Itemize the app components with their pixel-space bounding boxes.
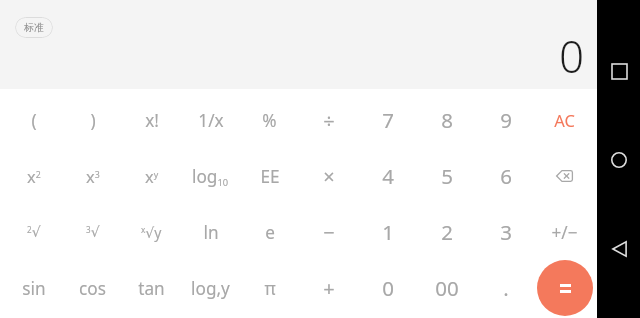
button[interactable]: ln: [181, 204, 240, 260]
staticText: EE: [260, 165, 280, 188]
button[interactable]: xy: [122, 148, 181, 204]
staticText: 00: [435, 274, 459, 302]
button[interactable]: EE: [240, 148, 299, 204]
button[interactable]: log10: [181, 148, 240, 204]
button[interactable]: ): [63, 92, 122, 148]
staticText: .: [503, 274, 509, 302]
button[interactable]: −: [299, 204, 358, 260]
button[interactable]: +/−: [535, 204, 594, 260]
staticText: tan: [138, 277, 165, 300]
staticText: x√y: [141, 223, 162, 242]
button[interactable]: 5: [417, 148, 476, 204]
button[interactable]: tan: [122, 260, 181, 316]
staticText: 1: [382, 218, 394, 246]
button[interactable]: %: [240, 92, 299, 148]
button[interactable]: AC: [535, 92, 594, 148]
button[interactable]: Back: [599, 229, 639, 269]
button[interactable]: x√y: [122, 204, 181, 260]
staticText: 3√: [86, 224, 100, 240]
button[interactable]: 8: [417, 92, 476, 148]
staticText: 2√: [27, 224, 41, 240]
button[interactable]: 1/x: [181, 92, 240, 148]
button[interactable]: ×: [299, 148, 358, 204]
button[interactable]: 标准: [15, 17, 53, 38]
button[interactable]: Equals: [535, 260, 594, 316]
button[interactable]: cos: [63, 260, 122, 316]
staticText: 1/x: [198, 109, 224, 132]
staticText: x3: [86, 165, 100, 187]
button[interactable]: 2: [417, 204, 476, 260]
staticText: 7: [382, 106, 394, 134]
button[interactable]: +: [299, 260, 358, 316]
staticText: e: [265, 221, 275, 244]
button[interactable]: ÷: [299, 92, 358, 148]
button[interactable]: x2: [5, 148, 63, 204]
button[interactable]: 3: [476, 204, 535, 260]
staticText: 3: [500, 218, 512, 246]
staticText: 6: [500, 162, 512, 190]
staticText: π: [264, 277, 276, 300]
button[interactable]: 4: [358, 148, 417, 204]
button[interactable]: 2√: [5, 204, 63, 260]
staticText: cos: [79, 277, 106, 300]
staticText: ÷: [323, 107, 335, 134]
button[interactable]: 9: [476, 92, 535, 148]
staticText: x!: [145, 109, 159, 132]
button[interactable]: (: [5, 92, 63, 148]
staticText: 8: [441, 106, 453, 134]
button[interactable]: Backspace: [535, 148, 594, 204]
button[interactable]: 0: [358, 260, 417, 316]
staticText: 5: [441, 162, 453, 190]
staticText: (: [31, 109, 37, 132]
button[interactable]: log,y: [181, 260, 240, 316]
staticText: 0: [559, 26, 585, 86]
button[interactable]: x!: [122, 92, 181, 148]
staticText: +/−: [551, 221, 578, 244]
staticText: +: [323, 275, 335, 302]
staticText: log10: [192, 165, 229, 188]
staticText: 4: [382, 162, 394, 190]
staticText: 2: [441, 218, 453, 246]
staticText: ln: [203, 221, 219, 244]
button[interactable]: Recents: [599, 51, 639, 91]
staticText: 标准: [24, 21, 44, 34]
button[interactable]: .: [476, 260, 535, 316]
staticText: 9: [500, 106, 512, 134]
staticText: ×: [323, 163, 335, 190]
button[interactable]: Equals: [537, 260, 593, 316]
staticText: x2: [27, 165, 41, 187]
button[interactable]: Home: [599, 140, 639, 180]
button[interactable]: e: [240, 204, 299, 260]
button[interactable]: 3√: [63, 204, 122, 260]
staticText: ): [90, 109, 96, 132]
staticText: AC: [554, 109, 575, 131]
button[interactable]: 00: [417, 260, 476, 316]
staticText: log,y: [191, 277, 230, 300]
staticText: sin: [22, 277, 46, 300]
button[interactable]: sin: [5, 260, 63, 316]
button[interactable]: π: [240, 260, 299, 316]
staticText: 0: [382, 274, 394, 302]
staticText: −: [323, 219, 335, 246]
button[interactable]: 7: [358, 92, 417, 148]
button[interactable]: 6: [476, 148, 535, 204]
staticText: %: [262, 109, 277, 132]
button[interactable]: 1: [358, 204, 417, 260]
staticText: xy: [145, 165, 159, 187]
button[interactable]: x3: [63, 148, 122, 204]
